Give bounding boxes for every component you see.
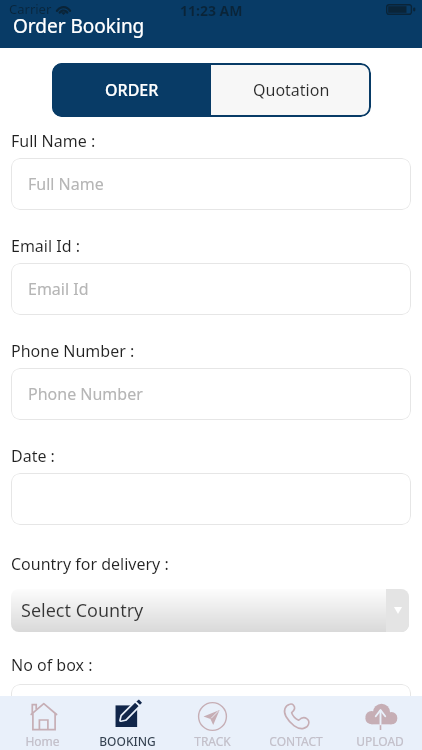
staticText: 11:23 AM — [180, 1, 243, 20]
button[interactable] — [11, 473, 411, 525]
staticText: Home — [25, 733, 60, 749]
button[interactable]: Home — [0, 696, 85, 750]
button[interactable]: Email Id — [11, 263, 411, 315]
button[interactable]: Select Country — [11, 589, 409, 632]
button[interactable]: Quotation — [211, 63, 371, 117]
staticText: BOOKING — [99, 733, 156, 749]
button[interactable]: Contact — [254, 696, 338, 750]
staticText: Full Name — [28, 173, 104, 195]
staticText: Carrier — [9, 0, 52, 18]
staticText: TRACK — [194, 733, 231, 749]
staticText: Phone Number — [28, 383, 143, 405]
button[interactable]: Track — [170, 696, 254, 750]
staticText: UPLOAD — [356, 733, 404, 749]
button[interactable] — [11, 684, 411, 736]
staticText: No of box : — [11, 654, 93, 676]
staticText: Phone Number : — [11, 340, 135, 362]
staticText: Email Id — [28, 278, 89, 300]
staticText: Order Booking — [13, 13, 145, 39]
staticText: Quotation — [253, 79, 330, 101]
button[interactable]: Booking — [85, 696, 170, 750]
button[interactable]: ORDER — [52, 63, 211, 117]
staticText: Select Country — [21, 598, 386, 623]
button[interactable]: Upload — [338, 696, 422, 750]
button[interactable]: Phone Number — [11, 368, 411, 420]
staticText: Full Name : — [11, 130, 96, 152]
staticText: CONTACT — [269, 733, 323, 749]
staticText: Email Id : — [11, 235, 80, 257]
button[interactable]: Full Name — [11, 158, 411, 210]
staticText: Date : — [11, 445, 55, 467]
staticText: ORDER — [105, 79, 159, 101]
staticText: Country for delivery : — [11, 553, 169, 575]
